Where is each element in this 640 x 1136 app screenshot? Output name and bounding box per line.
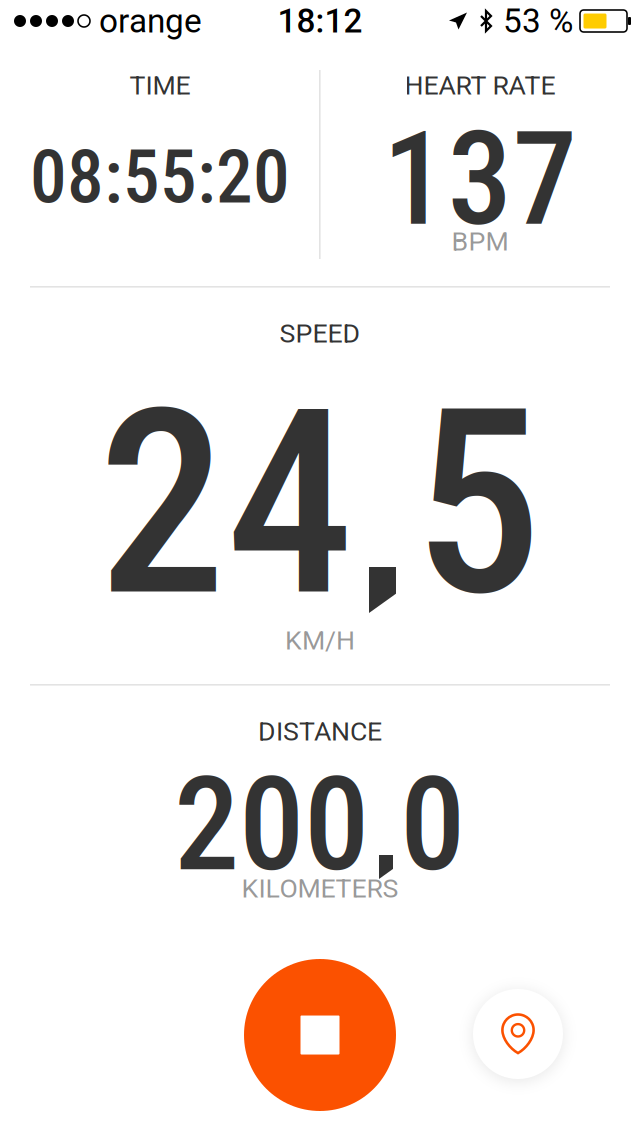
staticText: HEART RATE xyxy=(404,70,555,101)
staticText: orange xyxy=(99,1,202,41)
button[interactable]: Location xyxy=(473,989,563,1079)
staticText: 53 % xyxy=(503,1,573,41)
staticText: 137 xyxy=(382,104,577,255)
staticText: TIME xyxy=(129,70,190,101)
staticText: KM/H xyxy=(285,625,355,656)
button[interactable]: Stop xyxy=(244,959,396,1111)
staticText: 0 xyxy=(400,748,465,901)
staticText: 18:12 xyxy=(277,1,362,41)
staticText: DISTANCE xyxy=(258,716,382,747)
staticText: KILOMETERS xyxy=(241,873,398,904)
staticText: 24 xyxy=(98,354,354,654)
staticText: SPEED xyxy=(279,318,360,349)
staticText: BPM xyxy=(451,226,508,257)
staticText: 200 xyxy=(174,748,369,901)
staticText: 5 xyxy=(414,354,542,654)
staticText: 08:55:20 xyxy=(30,134,290,220)
